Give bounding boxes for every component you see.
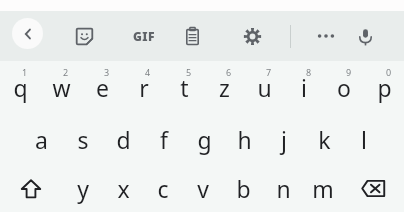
staticText: x bbox=[117, 173, 130, 204]
staticText: 9 bbox=[346, 66, 352, 78]
button[interactable]: t bbox=[164, 61, 204, 113]
button[interactable]: Stickers bbox=[65, 18, 103, 54]
button[interactable]: b bbox=[223, 165, 263, 212]
button[interactable]: q bbox=[0, 61, 41, 113]
staticText: 1 bbox=[22, 66, 28, 78]
staticText: o bbox=[337, 72, 351, 103]
button[interactable]: s bbox=[62, 113, 103, 165]
button[interactable]: h bbox=[224, 113, 264, 165]
staticText: f bbox=[160, 124, 168, 155]
staticText: m bbox=[312, 173, 334, 204]
button[interactable]: Back bbox=[12, 18, 43, 49]
staticText: 7 bbox=[266, 66, 272, 78]
staticText: p bbox=[377, 72, 392, 103]
staticText: 4 bbox=[145, 66, 151, 78]
staticText: 0 bbox=[386, 66, 392, 78]
button[interactable]: k bbox=[304, 113, 344, 165]
button[interactable]: More options bbox=[306, 19, 346, 53]
button[interactable]: r bbox=[123, 61, 164, 113]
staticText: v bbox=[197, 173, 209, 204]
staticText: r bbox=[139, 72, 149, 103]
button[interactable]: p bbox=[364, 61, 404, 113]
button[interactable]: y bbox=[62, 165, 103, 212]
staticText: i bbox=[301, 72, 307, 103]
button[interactable]: Backspace bbox=[343, 165, 404, 212]
staticText: d bbox=[116, 124, 131, 155]
staticText: k bbox=[318, 124, 331, 155]
staticText: g bbox=[197, 124, 212, 155]
staticText: t bbox=[180, 72, 189, 103]
staticText: GIF bbox=[133, 28, 155, 44]
staticText: 8 bbox=[306, 66, 312, 78]
staticText: h bbox=[237, 124, 252, 155]
staticText: j bbox=[281, 124, 287, 155]
button[interactable]: d bbox=[103, 113, 144, 165]
staticText: q bbox=[13, 72, 28, 103]
button[interactable]: z bbox=[204, 61, 244, 113]
button[interactable]: i bbox=[284, 61, 324, 113]
staticText: 6 bbox=[226, 66, 232, 78]
button[interactable]: x bbox=[103, 165, 143, 212]
staticText: e bbox=[96, 72, 109, 103]
staticText: y bbox=[77, 173, 89, 204]
button[interactable]: m bbox=[303, 165, 343, 212]
button[interactable]: j bbox=[264, 113, 304, 165]
button[interactable]: Voice input bbox=[346, 18, 384, 54]
staticText: u bbox=[257, 72, 272, 103]
staticText: s bbox=[77, 124, 89, 155]
staticText: b bbox=[236, 173, 251, 204]
button[interactable]: a bbox=[21, 113, 62, 165]
staticText: 2 bbox=[63, 66, 69, 78]
staticText: z bbox=[219, 72, 230, 103]
staticText: n bbox=[276, 173, 291, 204]
button[interactable]: u bbox=[244, 61, 284, 113]
button[interactable]: o bbox=[324, 61, 364, 113]
staticText: a bbox=[35, 124, 48, 155]
staticText: w bbox=[52, 72, 71, 103]
button[interactable]: Shift bbox=[0, 165, 62, 212]
button[interactable]: f bbox=[144, 113, 184, 165]
button[interactable]: Clipboard bbox=[173, 18, 211, 54]
button[interactable]: GIF bbox=[124, 19, 164, 53]
button[interactable]: n bbox=[263, 165, 303, 212]
button[interactable]: Settings bbox=[233, 18, 271, 54]
staticText: 5 bbox=[186, 66, 192, 78]
staticText: 3 bbox=[104, 66, 110, 78]
staticText: l bbox=[361, 124, 367, 155]
button[interactable]: g bbox=[184, 113, 224, 165]
button[interactable]: w bbox=[41, 61, 82, 113]
button[interactable]: l bbox=[344, 113, 384, 165]
staticText: c bbox=[157, 173, 169, 204]
button[interactable]: e bbox=[82, 61, 123, 113]
button[interactable]: c bbox=[143, 165, 183, 212]
button[interactable]: v bbox=[183, 165, 223, 212]
